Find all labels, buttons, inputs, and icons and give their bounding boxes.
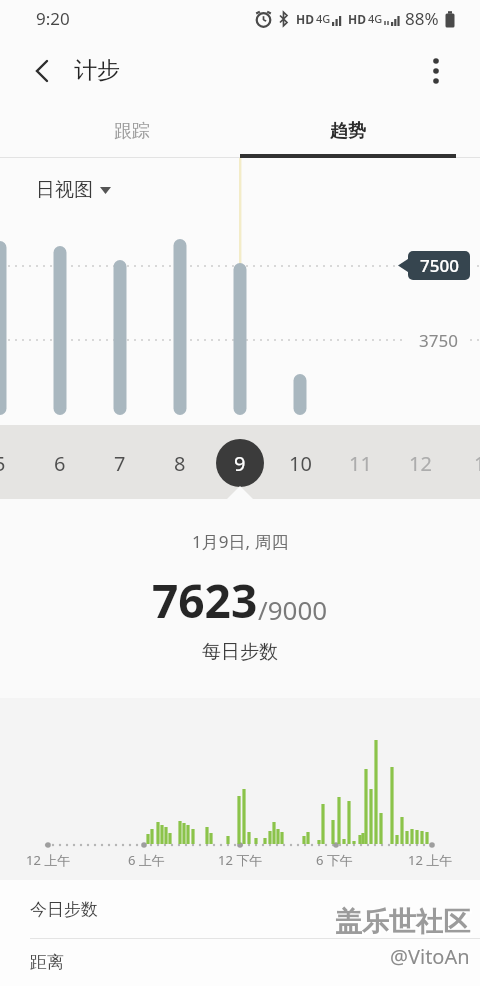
staticText: 每日步数: [202, 640, 278, 664]
staticText: HD: [348, 11, 366, 27]
staticText: 8: [174, 450, 186, 477]
staticText: 盖乐世社区: [335, 905, 470, 939]
staticText: 12 上午: [408, 851, 453, 869]
staticText: 今日步数: [30, 899, 98, 920]
staticText: HD: [296, 11, 314, 27]
staticText: 12 上午: [26, 851, 71, 869]
button[interactable]: 9: [210, 427, 270, 499]
staticText: 5: [0, 450, 6, 477]
staticText: 7623: [152, 569, 258, 632]
staticText: 3750: [419, 329, 458, 352]
staticText: 计步: [74, 56, 120, 85]
staticText: 9: [234, 450, 246, 477]
button[interactable]: [420, 55, 452, 87]
button[interactable]: 7: [90, 427, 150, 499]
staticText: @VitoAn: [390, 943, 470, 970]
staticText: 距离: [30, 952, 64, 973]
staticText: 4G: [368, 11, 383, 26]
button[interactable]: 趋势: [240, 105, 456, 158]
button[interactable]: 8: [150, 427, 210, 499]
staticText: 10: [289, 450, 312, 477]
staticText: 趋势: [330, 120, 366, 143]
staticText: 1月9日, 周四: [192, 530, 289, 553]
staticText: /9000: [258, 592, 328, 627]
button[interactable]: 11: [330, 427, 390, 499]
staticText: 6 下午: [316, 851, 353, 869]
button[interactable]: 距离: [0, 939, 480, 986]
button[interactable]: 今日步数: [0, 880, 480, 938]
staticText: 88%: [405, 7, 439, 30]
staticText: 7: [114, 450, 126, 477]
button[interactable]: 12: [390, 427, 450, 499]
button[interactable]: [24, 53, 60, 89]
staticText: 跟踪: [114, 120, 150, 143]
button[interactable]: 1: [450, 427, 480, 499]
staticText: 12 下午: [218, 851, 263, 869]
staticText: 日视图: [36, 178, 93, 202]
staticText: 6 上午: [128, 851, 165, 869]
button[interactable]: 6: [30, 427, 90, 499]
staticText: 盖乐世社区: [337, 907, 472, 941]
button[interactable]: 5: [0, 427, 30, 499]
staticText: 1: [474, 450, 480, 477]
button[interactable]: 10: [270, 427, 330, 499]
staticText: 9:20: [36, 7, 70, 30]
staticText: 12: [409, 450, 432, 477]
button[interactable]: 日视图: [36, 178, 111, 202]
staticText: 4G: [316, 11, 331, 26]
staticText: 7500: [420, 254, 459, 277]
staticText: 11: [349, 450, 372, 477]
staticText: 6: [54, 450, 66, 477]
button[interactable]: 跟踪: [24, 105, 240, 158]
staticText: @VitoAn: [391, 944, 471, 971]
